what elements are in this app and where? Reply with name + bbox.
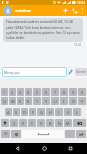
button[interactable]: !#1 (1, 130, 10, 138)
button[interactable]: X (19, 119, 27, 127)
button[interactable]: T (33, 97, 41, 105)
button[interactable]: Backspace (73, 119, 86, 127)
staticText: !#1 (4, 132, 8, 136)
button[interactable]: L (73, 108, 81, 116)
button[interactable]: 1 (1, 88, 8, 96)
staticText: W (11, 99, 15, 104)
staticText: Faturalanmak vadeniz sonlandi 60 GB, 10 … (6, 20, 80, 40)
staticText: N (58, 121, 61, 126)
button[interactable]: 0 (78, 88, 86, 96)
staticText: R (27, 99, 30, 104)
button[interactable]: 4 (25, 88, 32, 96)
button[interactable]: E (17, 97, 24, 105)
staticText: . (69, 132, 71, 137)
button[interactable]: Back (7, 143, 27, 154)
button[interactable]: New message (61, 6, 70, 15)
staticText: 8 (63, 90, 66, 95)
staticText: I (63, 99, 65, 104)
button[interactable]: Faturalanmak vadeniz sonlandi 60 GB, 10 … (3, 18, 83, 42)
staticText: 6 (45, 90, 48, 95)
button[interactable]: J (55, 108, 63, 116)
staticText: M (66, 121, 70, 126)
button[interactable]: Space (22, 130, 64, 138)
staticText: 4 (27, 90, 30, 95)
button[interactable]: 8 (60, 88, 68, 96)
staticText: C (31, 121, 34, 126)
staticText: T (36, 99, 39, 104)
staticText: 9 (72, 90, 75, 95)
button[interactable]: Recents (60, 143, 80, 154)
button[interactable]: 3 (17, 88, 24, 96)
staticText: 5 (36, 90, 39, 95)
button[interactable]: 2 (9, 88, 16, 96)
staticText: U (54, 99, 57, 104)
button[interactable]: Z (10, 119, 18, 127)
button[interactable]: C (28, 119, 36, 127)
button[interactable]: F (29, 108, 36, 116)
button[interactable]: Home (34, 143, 54, 154)
button[interactable]: Shift (1, 119, 9, 127)
staticText: 2 (11, 90, 14, 95)
staticText: K (67, 110, 70, 115)
button[interactable]: Q (1, 97, 8, 105)
button[interactable]: Enter (76, 130, 86, 138)
button[interactable]: K (64, 108, 72, 116)
button[interactable]: W (9, 97, 16, 105)
button[interactable]: Attach (68, 67, 73, 77)
staticText: Z (13, 121, 16, 126)
staticText: G (40, 110, 43, 115)
button[interactable]: G (37, 108, 45, 116)
staticText: O (72, 99, 75, 104)
staticText: vodafone (15, 8, 31, 13)
staticText: 7 (54, 90, 57, 95)
button[interactable]: Mesaj yaz (2, 67, 67, 77)
staticText: D (23, 110, 26, 115)
staticText: 18:54 (77, 1, 86, 5)
button[interactable]: Call (70, 6, 79, 15)
staticText: A (7, 110, 10, 115)
staticText: V (40, 121, 43, 126)
staticText: F (32, 110, 34, 115)
button[interactable]: 6 (42, 88, 50, 96)
button[interactable]: I (60, 97, 68, 105)
button[interactable]: R (25, 97, 32, 105)
staticText: 1 (3, 90, 6, 95)
button[interactable]: 5 (33, 88, 41, 96)
button[interactable]: Emoji (11, 130, 21, 138)
button[interactable]: M (64, 119, 72, 127)
button[interactable]: N (55, 119, 63, 127)
staticText: L (76, 110, 78, 115)
button[interactable]: Y (42, 97, 50, 105)
staticText: B (49, 121, 52, 126)
button[interactable]: U (51, 97, 59, 105)
staticText: E (19, 99, 22, 104)
button[interactable]: B (46, 119, 54, 127)
button[interactable]: 7 (51, 88, 59, 96)
staticText: H (49, 110, 52, 115)
button[interactable]: D (21, 108, 28, 116)
button[interactable]: P (78, 97, 86, 105)
staticText: Y (45, 99, 48, 104)
button[interactable]: H (46, 108, 54, 116)
staticText: Gönder (76, 70, 87, 74)
staticText: S (15, 110, 18, 115)
staticText: Mesaj yaz (4, 70, 20, 75)
staticText: 18:44 (74, 43, 82, 47)
button[interactable]: 9 (69, 88, 77, 96)
button[interactable]: More options (79, 7, 86, 14)
button[interactable]: S (13, 108, 20, 116)
button[interactable]: Contact (3, 6, 12, 15)
button[interactable]: . (65, 130, 75, 138)
staticText: 3 (19, 90, 22, 95)
button[interactable]: Gönder (75, 68, 87, 76)
staticText: 0 (81, 90, 84, 95)
staticText: P (81, 99, 84, 104)
staticText: Q (3, 99, 6, 104)
button[interactable]: A (5, 108, 12, 116)
staticText: J (58, 110, 60, 115)
button[interactable]: V (37, 119, 45, 127)
staticText: X (22, 121, 25, 126)
button[interactable]: O (69, 97, 77, 105)
